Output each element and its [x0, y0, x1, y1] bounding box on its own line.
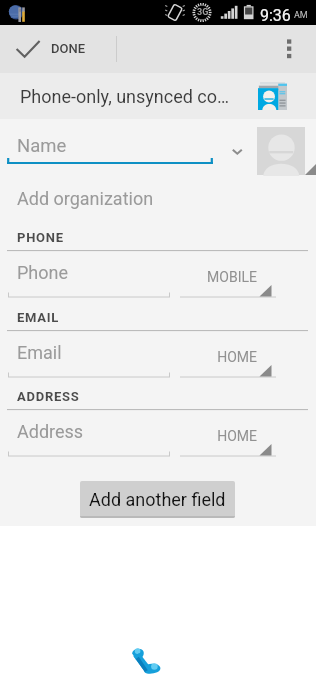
staticText: 9:36	[260, 6, 291, 25]
button[interactable]: More options	[274, 25, 316, 73]
staticText: PHONE	[17, 230, 64, 245]
button[interactable]: MOBILE	[182, 256, 276, 292]
button[interactable]: Add contact photo	[257, 127, 305, 175]
staticText: ADDRESS	[17, 389, 80, 404]
staticText: HOME	[182, 428, 257, 444]
button[interactable]: Phone	[0, 256, 172, 292]
staticText: DONE	[51, 41, 86, 56]
staticText: EMAIL	[17, 310, 60, 325]
button[interactable]: HOME	[182, 336, 276, 372]
button[interactable]: Add organization	[0, 182, 316, 214]
button[interactable]: Email	[0, 336, 172, 372]
button[interactable]	[0, 73, 316, 119]
button[interactable]: Expand name	[228, 140, 250, 162]
staticText: Add another field	[89, 489, 226, 510]
staticText: MOBILE	[182, 269, 257, 285]
staticText: Address	[17, 421, 84, 442]
staticText: AM	[294, 10, 308, 21]
staticText: HOME	[182, 349, 257, 365]
staticText: Name	[17, 135, 67, 157]
staticText: Add organization	[17, 188, 154, 209]
staticText: Email	[17, 342, 62, 363]
button[interactable]: DONE	[0, 25, 116, 73]
button[interactable]: Add another field	[80, 481, 235, 518]
staticText: Phone	[17, 262, 69, 283]
staticText: Phone-only, unsynced co…	[20, 86, 235, 107]
button[interactable]: Name	[0, 126, 214, 164]
staticText: 3G	[197, 7, 209, 18]
button[interactable]: HOME	[182, 415, 276, 451]
button[interactable]: Address	[0, 415, 172, 451]
